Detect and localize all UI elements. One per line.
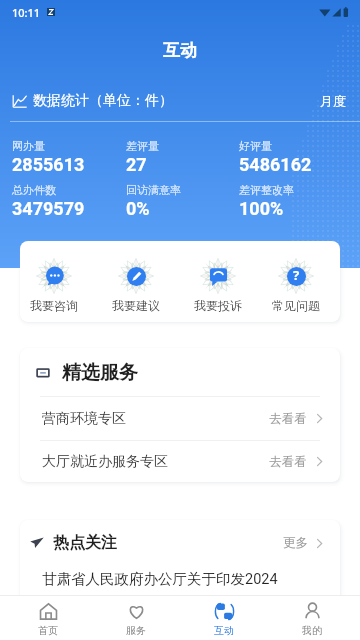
staticText: 我要咨询	[30, 298, 78, 313]
staticText: 常见问题	[272, 298, 320, 313]
staticText: 互动	[163, 40, 197, 61]
staticText: 我的	[302, 624, 322, 637]
button[interactable]: 互动	[184, 602, 264, 637]
button[interactable]: 大厅就近办服务专区	[20, 441, 340, 482]
staticText: 数据统计（单位：件）	[33, 92, 173, 110]
staticText: 首页	[38, 624, 58, 637]
staticText: 月度	[320, 93, 346, 109]
staticText: 总办件数	[12, 183, 56, 197]
button[interactable]: 营商环境专区	[20, 397, 340, 440]
staticText: 热点关注	[53, 533, 117, 553]
staticText: 网办量	[12, 139, 45, 153]
staticText: 5486162	[239, 154, 312, 175]
staticText: 2855613	[12, 154, 85, 175]
staticText: 去看看	[269, 454, 307, 470]
staticText: 差评量	[126, 139, 159, 153]
button[interactable]: 我要投诉	[177, 257, 259, 313]
staticText: 我要投诉	[194, 298, 242, 313]
staticText: ?	[293, 266, 300, 284]
staticText: 10:11	[12, 5, 41, 20]
staticText: 我要建议	[112, 298, 160, 313]
button[interactable]: 首页	[8, 602, 88, 637]
staticText: 27	[126, 154, 147, 175]
staticText: 营商环境专区	[42, 410, 126, 428]
button[interactable]: 我要咨询	[20, 257, 95, 313]
staticText: 更多	[283, 535, 308, 551]
staticText: 大厅就近办服务专区	[42, 453, 168, 471]
staticText: 0%	[126, 198, 150, 219]
staticText: 去看看	[269, 411, 307, 427]
staticText: 互动	[214, 624, 234, 637]
button[interactable]: 我要建议	[95, 257, 177, 313]
staticText: 甘肃省人民政府办公厅关于印发2024	[42, 570, 278, 588]
staticText: 100%	[239, 198, 284, 219]
button[interactable]: 服务	[96, 602, 176, 637]
staticText: 年全省政务公开工作要点的通知	[42, 593, 245, 611]
staticText: 差评整改率	[239, 183, 294, 197]
staticText: 服务	[126, 624, 146, 637]
staticText: 精选服务	[62, 361, 138, 385]
button[interactable]: 我的	[272, 602, 352, 637]
button[interactable]: 更多	[283, 535, 325, 551]
staticText: 回访满意率	[126, 183, 181, 197]
button[interactable]: ?	[259, 257, 333, 313]
staticText: 好评量	[239, 139, 272, 153]
staticText: 3479579	[12, 198, 85, 219]
